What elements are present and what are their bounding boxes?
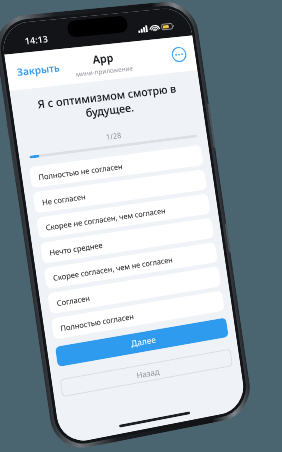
- staticText: Нечто среднее: [49, 240, 103, 258]
- staticText: Я с оптимизмом смотрю в будущее.: [21, 79, 193, 127]
- staticText: Назад: [136, 365, 160, 380]
- staticText: Скорее не согласен, чем согласен: [45, 205, 166, 233]
- staticText: Полностью не согласен: [38, 161, 124, 182]
- button[interactable]: Меню: [169, 45, 189, 64]
- staticText: Согласен: [56, 293, 91, 308]
- staticText: Не согласен: [41, 191, 86, 207]
- staticText: 1/28: [17, 120, 206, 153]
- staticText: Далее: [130, 334, 157, 350]
- button[interactable]: Полностью не согласен: [29, 145, 204, 188]
- button[interactable]: Закрыть: [5, 55, 69, 84]
- staticText: App: [91, 50, 115, 67]
- staticText: 14:13: [24, 32, 49, 46]
- button[interactable]: Не согласен: [32, 169, 207, 213]
- button[interactable]: Нечто среднее: [40, 217, 214, 264]
- staticText: Закрыть: [16, 60, 61, 79]
- button[interactable]: Согласен: [47, 266, 221, 314]
- button[interactable]: Далее: [55, 317, 229, 367]
- staticText: Скорее согласен, чем не согласен: [52, 254, 173, 283]
- button[interactable]: Скорее не согласен, чем согласен: [36, 193, 211, 239]
- button[interactable]: Назад: [60, 348, 233, 397]
- staticText: мини-приложение: [75, 63, 134, 79]
- button[interactable]: Скорее согласен, чем не согласен: [43, 242, 218, 289]
- staticText: Полностью согласен: [60, 311, 135, 333]
- button[interactable]: Полностью согласен: [51, 290, 225, 340]
